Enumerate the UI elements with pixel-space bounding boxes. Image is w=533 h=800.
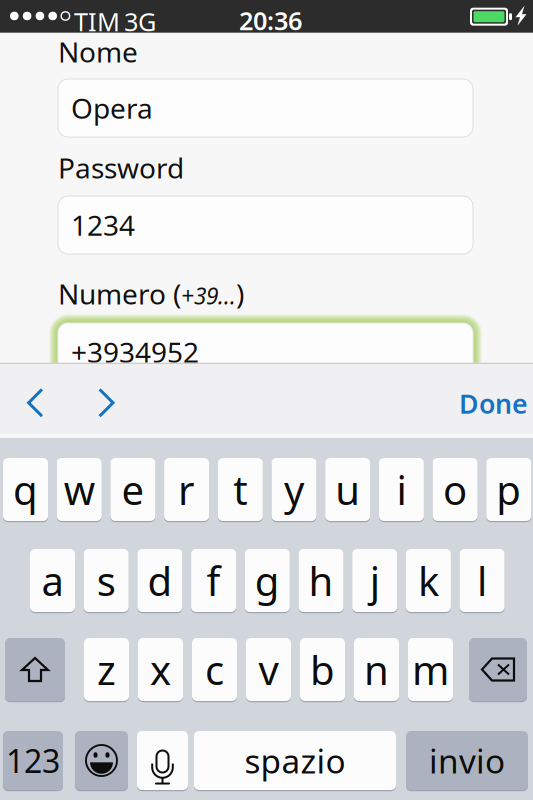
button[interactable]: y: [271, 457, 316, 522]
button[interactable]: 123: [3, 730, 63, 791]
staticText: p: [496, 463, 521, 516]
staticText: x: [150, 643, 171, 696]
staticText: v: [258, 643, 278, 696]
button[interactable]: spazio: [194, 730, 396, 791]
button[interactable]: b: [300, 637, 345, 702]
button[interactable]: s: [84, 548, 129, 613]
staticText: Done: [459, 386, 528, 421]
staticText: i: [396, 463, 406, 516]
staticText: q: [13, 463, 38, 516]
staticText: b: [310, 643, 335, 696]
staticText: 20:36: [239, 4, 302, 37]
staticText: u: [335, 463, 360, 516]
button[interactable]: z: [84, 637, 129, 702]
staticText: s: [97, 554, 116, 607]
staticText: t: [233, 463, 247, 516]
staticText: 123: [6, 739, 60, 782]
button[interactable]: q: [3, 457, 48, 522]
button[interactable]: j: [352, 548, 397, 613]
button[interactable]: Next field: [80, 368, 133, 438]
staticText: w: [64, 463, 95, 516]
staticText: m: [412, 643, 449, 696]
staticText: c: [205, 643, 224, 696]
staticText: f: [207, 554, 221, 607]
staticText: a: [41, 554, 63, 607]
staticText: Password: [58, 149, 184, 186]
button[interactable]: [5, 637, 65, 702]
button[interactable]: w: [57, 457, 102, 522]
button[interactable]: [75, 730, 128, 791]
staticText: y: [284, 463, 304, 516]
button[interactable]: r: [164, 457, 209, 522]
staticText: r: [178, 463, 195, 516]
button[interactable]: a: [30, 548, 75, 613]
staticText: j: [370, 554, 380, 607]
button[interactable]: Previous field: [9, 368, 62, 438]
button[interactable]: f: [191, 548, 236, 613]
button[interactable]: h: [298, 548, 343, 613]
button[interactable]: t: [218, 457, 263, 522]
staticText: 1234: [71, 206, 135, 244]
button[interactable]: c: [192, 637, 237, 702]
button[interactable]: o: [433, 457, 478, 522]
button[interactable]: [469, 637, 527, 702]
staticText: o: [443, 463, 467, 516]
button[interactable]: g: [245, 548, 290, 613]
staticText: g: [255, 554, 280, 607]
staticText: +3934952: [71, 333, 199, 371]
staticText: k: [418, 554, 439, 607]
button[interactable]: n: [354, 637, 399, 702]
button[interactable]: v: [246, 637, 291, 702]
staticText: l: [477, 554, 487, 607]
staticText: Opera: [71, 89, 153, 127]
staticText: TIM: [74, 5, 120, 38]
staticText: spazio: [244, 738, 345, 783]
staticText: Numero (+39...): [58, 275, 244, 312]
staticText: e: [121, 463, 144, 516]
button[interactable]: [137, 730, 188, 791]
staticText: Nome: [58, 33, 138, 70]
staticText: n: [364, 643, 389, 696]
staticText: z: [97, 643, 116, 696]
button[interactable]: d: [137, 548, 182, 613]
button[interactable]: Done: [445, 364, 533, 443]
button[interactable]: e: [110, 457, 155, 522]
button[interactable]: k: [406, 548, 451, 613]
button[interactable]: u: [325, 457, 370, 522]
staticText: 3G: [124, 5, 156, 38]
button[interactable]: p: [486, 457, 531, 522]
button[interactable]: x: [138, 637, 183, 702]
staticText: h: [308, 554, 333, 607]
button[interactable]: i: [379, 457, 424, 522]
staticText: invio: [429, 738, 505, 783]
staticText: d: [147, 554, 172, 607]
button[interactable]: l: [460, 548, 505, 613]
button[interactable]: invio: [406, 730, 528, 791]
button[interactable]: m: [408, 637, 453, 702]
